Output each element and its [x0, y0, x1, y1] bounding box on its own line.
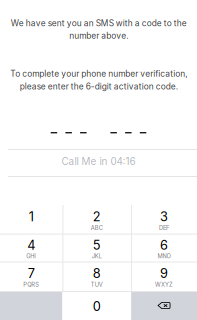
button[interactable]: Blank [0, 291, 62, 320]
staticText: MNO [158, 253, 171, 260]
button[interactable]: 2 [62, 205, 131, 234]
staticText: Call Me in 04:16 [61, 155, 135, 167]
button[interactable]: 4 [0, 234, 62, 261]
button[interactable]: Delete [131, 291, 197, 320]
staticText: To complete your phone number verificati… [10, 69, 187, 91]
staticText: 5 [93, 237, 101, 253]
button[interactable]: 1 [0, 205, 62, 234]
staticText: DEF [159, 224, 169, 231]
staticText: 2 [93, 209, 101, 224]
staticText: WXYZ [155, 281, 173, 288]
staticText: 1 [29, 209, 34, 224]
staticText: 8 [93, 266, 101, 281]
staticText: 7 [28, 266, 35, 281]
staticText: 6 [160, 237, 168, 253]
staticText: 4 [27, 237, 35, 253]
staticText: 9 [160, 266, 168, 281]
staticText: ABC [91, 224, 103, 231]
staticText: TUV [91, 281, 103, 288]
staticText: We have sent you an SMS with a code to t… [10, 18, 186, 41]
button[interactable]: 3 [131, 205, 197, 234]
button[interactable]: Call Me in 04:16 [0, 148, 197, 175]
staticText: 0 [93, 299, 101, 314]
button[interactable]: 7 [0, 261, 62, 291]
button[interactable]: 6 [131, 234, 197, 261]
staticText: JKL [92, 253, 102, 260]
button[interactable]: 5 [62, 234, 131, 261]
staticText: 3 [160, 209, 168, 224]
staticText: GHI [26, 253, 36, 260]
button[interactable]: 8 [62, 261, 131, 291]
staticText: PQRS [23, 281, 39, 288]
button[interactable]: 0 [62, 291, 131, 320]
button[interactable]: 9 [131, 261, 197, 291]
